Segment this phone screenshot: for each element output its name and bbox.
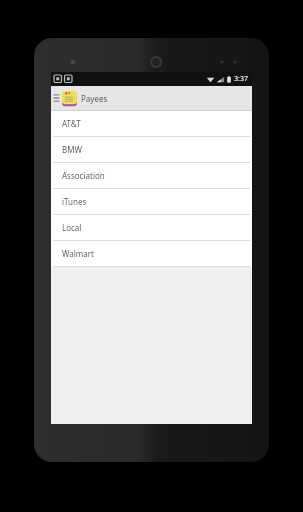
button[interactable]: Open navigation drawer xyxy=(51,86,252,110)
staticText: Payees xyxy=(81,93,108,104)
button[interactable]: Walmart xyxy=(51,241,252,267)
button[interactable]: BMW xyxy=(51,137,252,163)
staticText: Local xyxy=(62,222,82,233)
staticText: BMW xyxy=(62,144,82,155)
staticText: 3:37 xyxy=(234,74,248,84)
other: Open navigation drawer xyxy=(53,91,60,105)
button[interactable]: Local xyxy=(51,215,252,241)
staticText: AT&T xyxy=(62,118,81,129)
button[interactable]: AT&T xyxy=(51,111,252,137)
button[interactable]: Association xyxy=(51,163,252,189)
staticText: Walmart xyxy=(62,248,94,259)
other: App icon xyxy=(61,90,78,107)
staticText: iTunes xyxy=(62,196,87,207)
staticText: Association xyxy=(62,170,105,181)
button[interactable]: iTunes xyxy=(51,189,252,215)
